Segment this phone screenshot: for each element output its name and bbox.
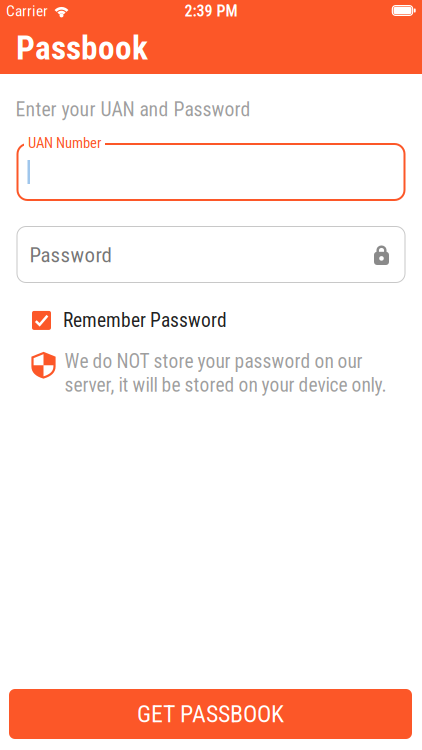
staticText: We do NOT store your password on our bbox=[64, 350, 362, 373]
button[interactable]: UAN Number bbox=[16, 135, 405, 201]
button[interactable]: Password bbox=[16, 226, 405, 283]
button[interactable]: GET PASSBOOK bbox=[9, 689, 412, 739]
button[interactable]: Remember Password bbox=[32, 309, 227, 332]
staticText: UAN Number bbox=[28, 134, 101, 152]
staticText: Remember Password bbox=[63, 309, 227, 332]
staticText: 2:39 PM bbox=[184, 2, 237, 20]
staticText: Password bbox=[29, 243, 111, 267]
staticText: GET PASSBOOK bbox=[137, 700, 284, 728]
staticText: server, it will be stored on your device… bbox=[64, 374, 386, 397]
staticText: Enter your UAN and Password bbox=[15, 98, 250, 121]
staticText: Carrier bbox=[6, 2, 48, 20]
staticText: Passbook bbox=[16, 28, 148, 68]
